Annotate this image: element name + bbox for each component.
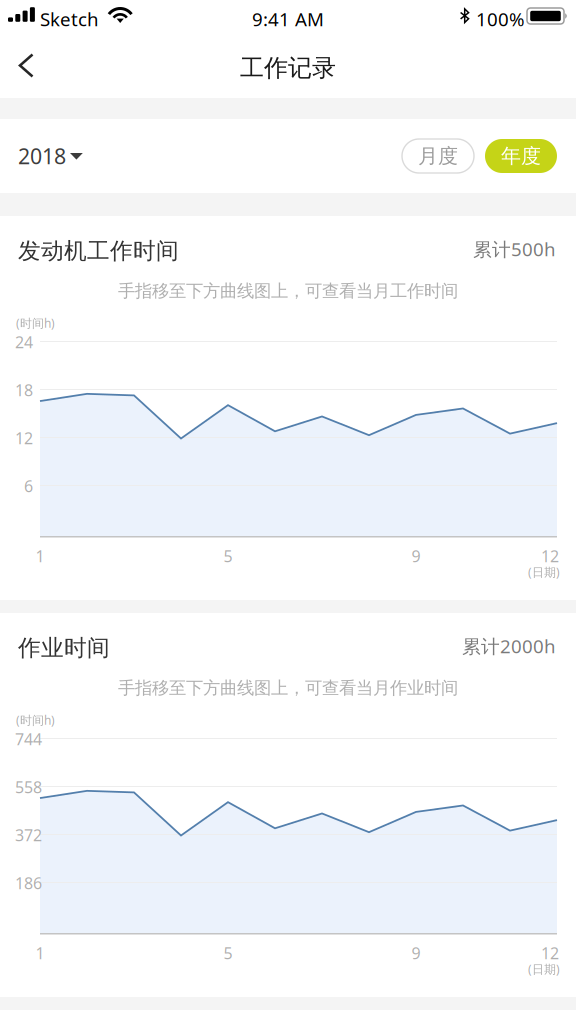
staticText: 手指移至下方曲线图上，可查看当月工作时间: [118, 280, 458, 302]
staticText: 100%: [476, 7, 525, 31]
staticText: 累计2000h: [462, 634, 556, 658]
staticText: 12: [541, 545, 559, 567]
button[interactable]: 月度: [0, 119, 72, 153]
staticText: 6: [24, 475, 33, 497]
staticText: 9:41 AM: [252, 7, 324, 31]
staticText: (时间h): [16, 315, 55, 331]
staticText: 月度: [418, 144, 458, 168]
button[interactable]: 年度: [0, 119, 72, 153]
staticText: 558: [15, 776, 42, 798]
staticText: 744: [15, 728, 42, 750]
staticText: 工作记录: [240, 53, 336, 83]
staticText: 9: [411, 942, 420, 964]
staticText: 9: [411, 545, 420, 567]
staticText: 12: [15, 427, 33, 449]
button[interactable]: Back: [0, 40, 49, 99]
staticText: (日期): [528, 564, 560, 580]
staticText: (时间h): [16, 712, 55, 728]
staticText: 372: [15, 824, 42, 846]
staticText: 1: [35, 942, 44, 964]
staticText: 18: [15, 379, 33, 401]
staticText: 2018: [18, 142, 66, 170]
staticText: 作业时间: [18, 634, 110, 662]
staticText: Sketch: [40, 7, 99, 31]
button[interactable]: 2018: [0, 119, 96, 155]
staticText: 5: [223, 545, 232, 567]
staticText: 12: [541, 942, 559, 964]
staticText: 累计500h: [473, 237, 556, 261]
staticText: 5: [223, 942, 232, 964]
staticText: 24: [15, 331, 33, 353]
staticText: (日期): [528, 961, 560, 977]
staticText: 1: [35, 545, 44, 567]
staticText: 186: [15, 872, 42, 894]
staticText: 发动机工作时间: [18, 237, 179, 265]
staticText: 手指移至下方曲线图上，可查看当月作业时间: [118, 677, 458, 699]
staticText: 年度: [501, 144, 541, 168]
